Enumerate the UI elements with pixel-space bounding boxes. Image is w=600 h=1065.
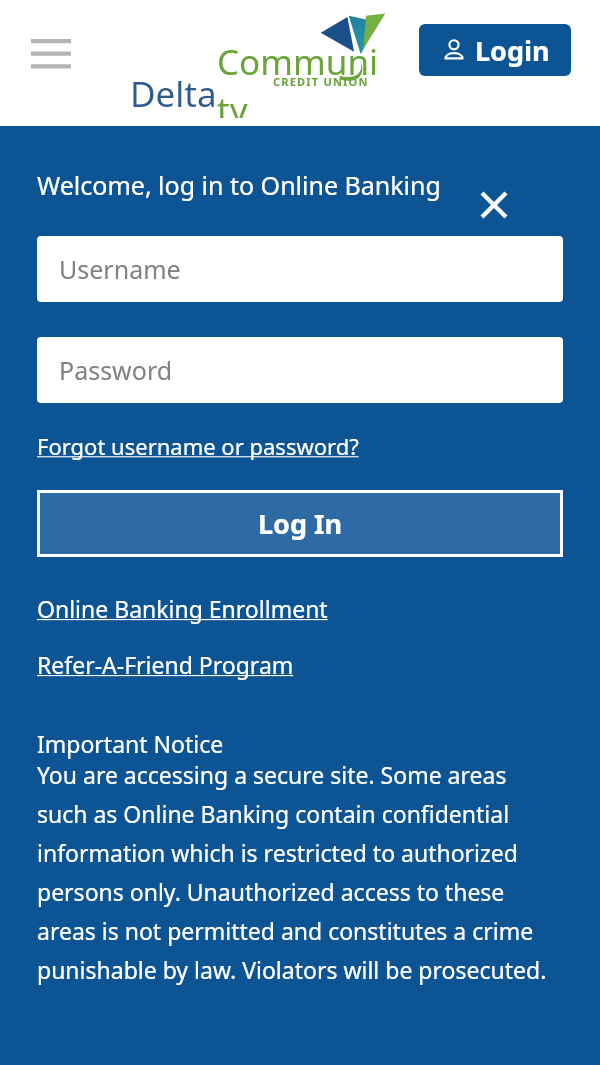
button[interactable]: Online Banking Enrollment [37, 593, 328, 624]
button[interactable]: Menu [24, 30, 78, 76]
staticText: Delta [130, 70, 217, 118]
staticText: Community [217, 38, 386, 118]
staticText: Important Notice [37, 728, 224, 759]
button[interactable]: Login [419, 24, 571, 76]
staticText: Online Banking Enrollment [37, 593, 328, 624]
staticText: Forgot username or password? [37, 431, 359, 461]
staticText: Refer-A-Friend Program [37, 649, 294, 680]
button[interactable]: Username [37, 236, 563, 302]
button[interactable]: Log In [40, 493, 560, 554]
button[interactable]: Password [37, 337, 563, 403]
staticText: Login [475, 32, 550, 69]
button[interactable]: Close [467, 178, 521, 232]
staticText: Password [59, 353, 173, 387]
staticText: Log In [258, 505, 343, 542]
staticText: You are accessing a secure site. Some ar… [37, 759, 560, 985]
button[interactable]: Refer-A-Friend Program [37, 649, 294, 680]
staticText: CREDIT UNION [273, 74, 369, 89]
button[interactable]: Forgot username or password? [37, 431, 359, 461]
staticText: Welcome, log in to Online Banking [37, 168, 457, 202]
staticText: Username [59, 252, 181, 286]
